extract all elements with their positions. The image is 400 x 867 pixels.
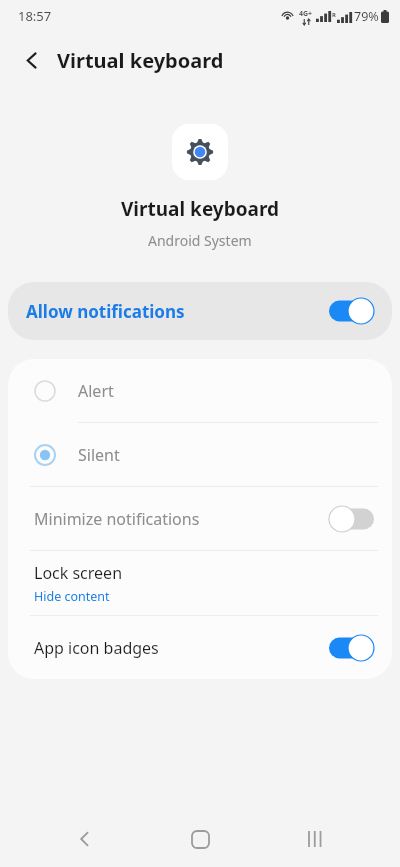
staticText: Allow notifications bbox=[26, 300, 185, 323]
staticText: Minimize notifications bbox=[34, 508, 200, 530]
button[interactable]: Recents bbox=[285, 811, 345, 867]
staticText: R bbox=[332, 11, 336, 19]
button[interactable]: Allow notifications bbox=[8, 282, 392, 340]
button[interactable]: Back bbox=[10, 38, 54, 82]
button[interactable]: Alert bbox=[8, 359, 392, 422]
staticText: Alert bbox=[78, 380, 114, 402]
staticText: Lock screen bbox=[34, 562, 123, 584]
staticText: Silent bbox=[78, 444, 120, 466]
staticText: 4G+ bbox=[299, 9, 313, 19]
button[interactable]: App icon badges bbox=[8, 616, 392, 679]
button[interactable]: Back bbox=[55, 811, 115, 867]
staticText: Android System bbox=[148, 231, 252, 250]
staticText: Hide content bbox=[34, 588, 110, 605]
staticText: App icon badges bbox=[34, 637, 159, 659]
staticText: 18:57 bbox=[18, 7, 52, 25]
button[interactable]: Home bbox=[170, 811, 230, 867]
staticText: 79% bbox=[354, 8, 379, 25]
button[interactable]: Silent bbox=[8, 423, 392, 486]
button[interactable]: Minimize notifications bbox=[8, 487, 392, 550]
staticText: Virtual keyboard bbox=[57, 47, 224, 74]
button[interactable]: Lock screen bbox=[8, 551, 392, 615]
staticText: Virtual keyboard bbox=[121, 196, 280, 222]
